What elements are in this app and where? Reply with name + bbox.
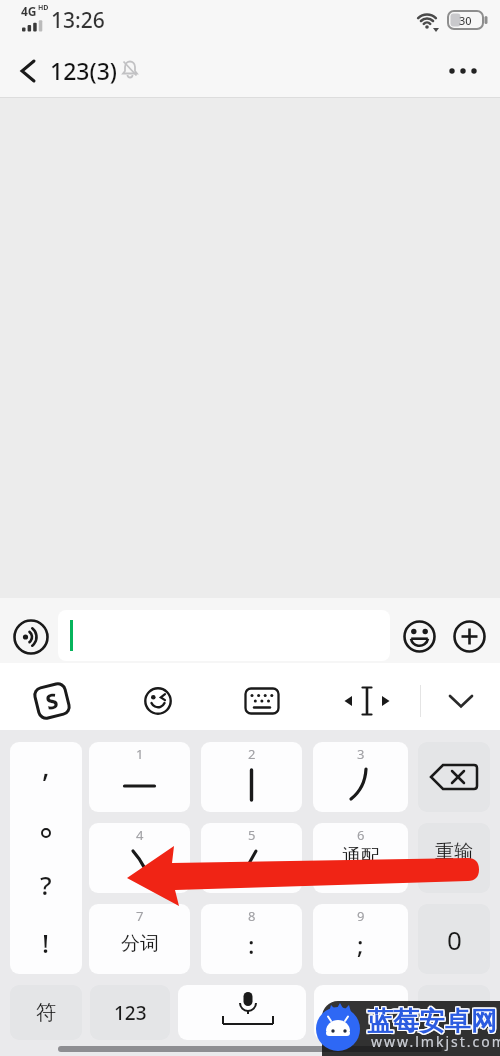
button[interactable] bbox=[12, 54, 46, 88]
staticText: , bbox=[42, 747, 50, 785]
button[interactable] bbox=[313, 742, 408, 812]
button[interactable] bbox=[201, 823, 302, 893]
staticText: HD bbox=[38, 3, 49, 13]
staticText: 蓝莓安卓网 bbox=[368, 1006, 498, 1039]
button[interactable] bbox=[58, 610, 390, 661]
button[interactable] bbox=[418, 823, 490, 893]
button[interactable] bbox=[418, 985, 490, 1040]
staticText: 蓝莓安卓网 bbox=[366, 1004, 496, 1037]
staticText: 5 bbox=[248, 826, 256, 844]
staticText: 2 bbox=[248, 745, 256, 763]
button[interactable] bbox=[343, 684, 391, 718]
staticText: 7 bbox=[136, 907, 144, 925]
staticText: 9 bbox=[357, 907, 365, 925]
staticText: 6 bbox=[357, 826, 365, 844]
staticText: 4 bbox=[136, 826, 144, 844]
button[interactable] bbox=[13, 619, 49, 655]
button[interactable] bbox=[89, 742, 190, 812]
button[interactable] bbox=[313, 904, 408, 974]
staticText: 蓝莓安卓网 bbox=[367, 1004, 497, 1037]
button[interactable] bbox=[453, 620, 486, 653]
button[interactable] bbox=[444, 687, 478, 715]
staticText: 3 bbox=[357, 745, 365, 763]
staticText: 0 bbox=[447, 922, 462, 957]
staticText: 123(3) bbox=[50, 55, 117, 86]
button[interactable] bbox=[90, 985, 170, 1040]
staticText: 4G bbox=[21, 3, 37, 19]
button[interactable] bbox=[418, 904, 490, 974]
staticText: ; bbox=[357, 928, 364, 961]
button[interactable] bbox=[89, 904, 190, 974]
button[interactable] bbox=[201, 742, 302, 812]
staticText: 通配 bbox=[342, 845, 380, 869]
staticText: 1 bbox=[136, 745, 144, 763]
button[interactable] bbox=[10, 985, 82, 1040]
staticText: 蓝莓安卓网 bbox=[367, 1005, 497, 1038]
staticText: 123 bbox=[114, 1000, 147, 1026]
staticText: 蓝莓安卓网 bbox=[366, 1005, 496, 1038]
staticText: S bbox=[43, 686, 61, 717]
staticText: 30 bbox=[459, 13, 472, 28]
staticText: 蓝莓安卓网 bbox=[368, 1005, 498, 1038]
button[interactable] bbox=[201, 904, 302, 974]
button[interactable] bbox=[178, 985, 306, 1040]
staticText: 蓝莓安卓网 bbox=[367, 1006, 497, 1039]
staticText: 重输 bbox=[435, 840, 473, 864]
staticText: www.lmkjst.com bbox=[371, 1032, 500, 1051]
button[interactable] bbox=[313, 823, 408, 893]
staticText: 蓝莓安卓网 bbox=[368, 1004, 498, 1037]
staticText: 13:26 bbox=[51, 6, 105, 35]
button[interactable] bbox=[10, 742, 82, 974]
button[interactable] bbox=[418, 742, 490, 812]
staticText: 分词 bbox=[121, 932, 159, 956]
button[interactable] bbox=[89, 823, 190, 893]
button[interactable]: S bbox=[31, 680, 73, 722]
button[interactable] bbox=[438, 54, 488, 88]
staticText: ? bbox=[40, 867, 52, 902]
staticText: ! bbox=[42, 925, 50, 960]
button[interactable] bbox=[144, 687, 172, 715]
staticText: 蓝莓安卓网 bbox=[366, 1006, 496, 1039]
button[interactable] bbox=[314, 985, 408, 1040]
button[interactable] bbox=[245, 687, 279, 715]
staticText: 8 bbox=[248, 907, 256, 925]
staticText: : bbox=[248, 928, 255, 961]
button[interactable] bbox=[403, 620, 436, 653]
staticText: 符 bbox=[36, 1000, 56, 1025]
